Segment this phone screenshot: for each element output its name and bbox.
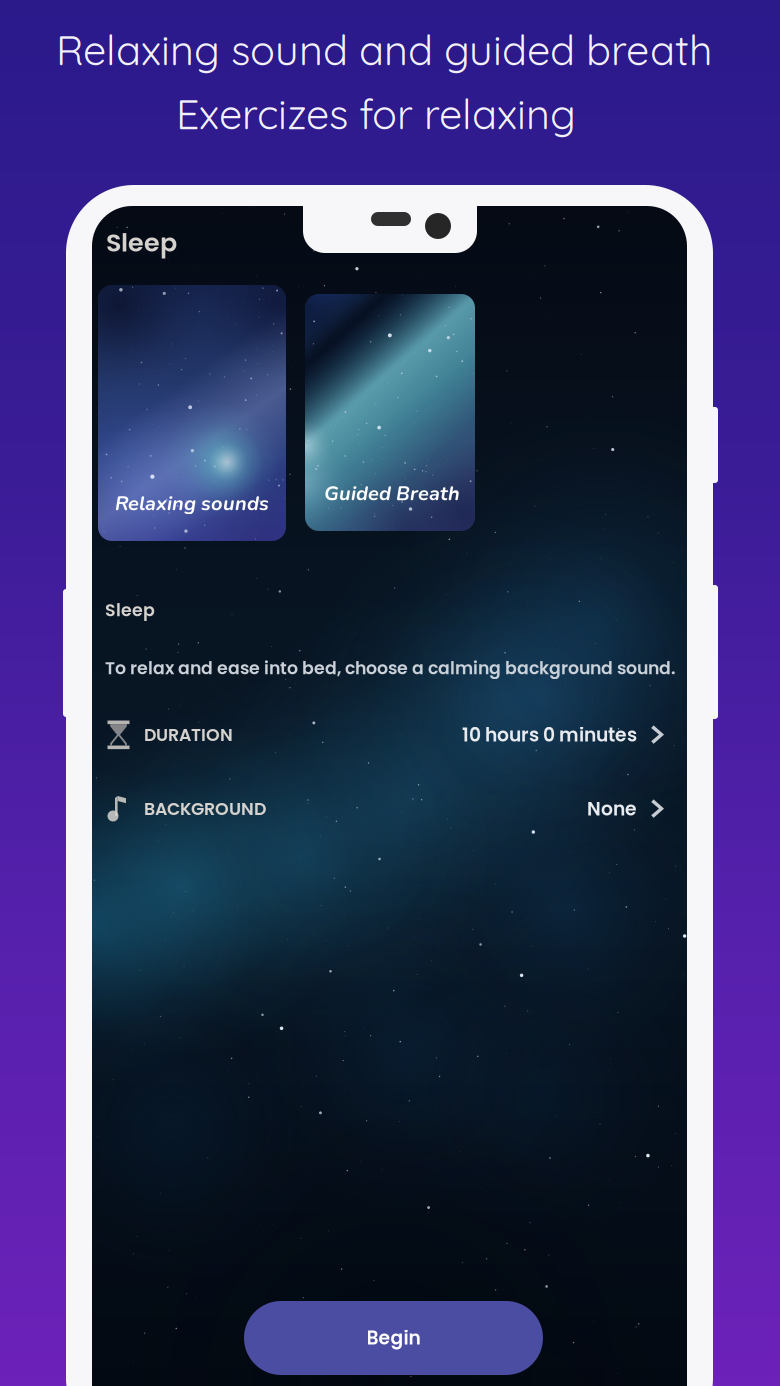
staticText: Relaxing sound and guided breath: [56, 24, 712, 76]
staticText: Sleep: [106, 225, 177, 260]
staticText: Relaxing sounds: [115, 490, 269, 517]
staticText: 10 hours 0 minutes: [462, 722, 637, 748]
staticText: To relax and ease into bed, choose a cal…: [105, 656, 676, 680]
staticText: BACKGROUND: [144, 797, 266, 821]
button[interactable]: Relaxing sounds: [98, 285, 286, 541]
button[interactable]: Guided Breath: [305, 294, 475, 531]
staticText: Guided Breath: [324, 480, 460, 507]
button[interactable]: BACKGROUND: [106, 790, 666, 828]
button[interactable]: DURATION: [106, 716, 666, 754]
staticText: None: [587, 796, 637, 822]
staticText: Begin: [366, 1325, 420, 1351]
staticText: DURATION: [144, 723, 233, 747]
button[interactable]: Begin: [244, 1301, 543, 1375]
staticText: Exercizes for relaxing: [176, 88, 576, 140]
staticText: Sleep: [105, 598, 155, 622]
